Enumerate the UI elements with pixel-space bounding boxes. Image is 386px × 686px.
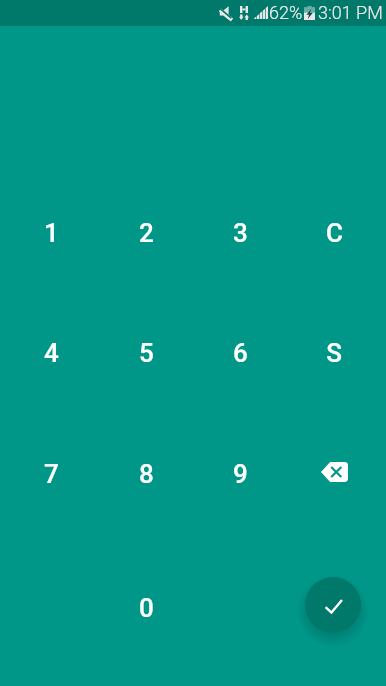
button[interactable]: 9: [200, 438, 280, 510]
button[interactable]: C: [294, 197, 374, 269]
button[interactable]: 1: [11, 197, 91, 269]
button[interactable]: 7: [11, 438, 91, 510]
button[interactable]: 0: [106, 572, 186, 644]
button[interactable]: 3: [200, 197, 280, 269]
staticText: 4: [44, 338, 59, 368]
button[interactable]: 8: [106, 438, 186, 510]
staticText: 62%: [269, 2, 303, 23]
staticText: 1: [44, 218, 59, 248]
button[interactable]: Confirm: [305, 577, 361, 633]
button[interactable]: 6: [200, 317, 280, 389]
button[interactable]: 5: [106, 317, 186, 389]
staticText: 3: [233, 218, 248, 248]
button[interactable]: 2: [106, 197, 186, 269]
staticText: 0: [139, 593, 154, 623]
staticText: 5: [139, 338, 154, 368]
staticText: 7: [44, 459, 59, 489]
staticText: S: [326, 338, 342, 368]
staticText: 6: [233, 338, 248, 368]
button[interactable]: Backspace: [294, 436, 374, 508]
staticText: 2: [139, 218, 154, 248]
staticText: 3:01 PM: [318, 2, 383, 23]
staticText: 9: [233, 459, 248, 489]
button[interactable]: S: [294, 317, 374, 389]
button[interactable]: 4: [11, 317, 91, 389]
staticText: 8: [139, 459, 154, 489]
staticText: C: [326, 218, 343, 248]
